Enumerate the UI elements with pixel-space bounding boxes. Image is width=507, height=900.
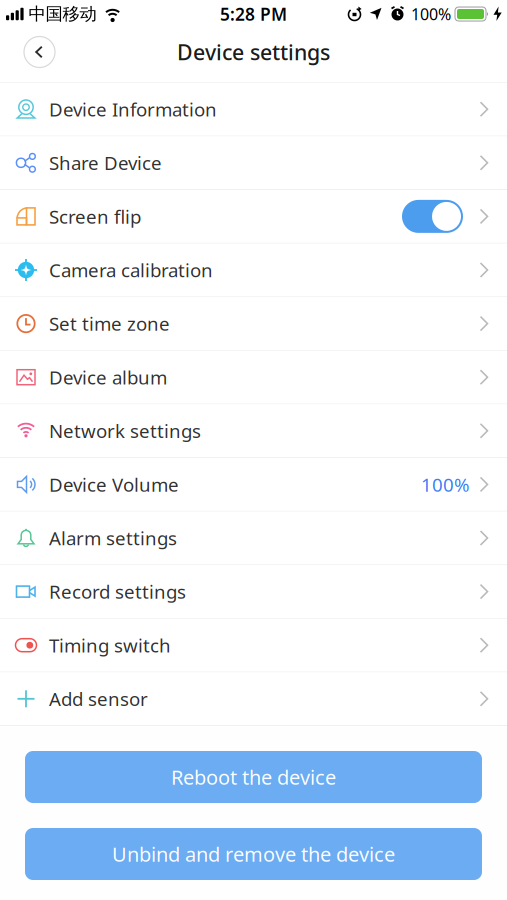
staticText: 100% xyxy=(421,472,470,497)
button[interactable]: Camera calibration xyxy=(0,244,507,297)
staticText: Device Information xyxy=(49,97,217,122)
button[interactable]: Share Device xyxy=(0,136,507,190)
button[interactable]: Unbind and remove the device xyxy=(25,828,482,880)
staticText: Alarm settings xyxy=(49,526,177,550)
staticText: Set time zone xyxy=(49,311,170,336)
staticText: Reboot the device xyxy=(171,764,336,790)
staticText: Share Device xyxy=(49,150,162,175)
staticText: Device album xyxy=(49,365,167,390)
button[interactable]: Device album xyxy=(0,351,507,404)
staticText: Camera calibration xyxy=(49,258,213,282)
staticText: 100% xyxy=(411,3,451,25)
button[interactable]: Back xyxy=(24,36,55,67)
button[interactable]: Add sensor xyxy=(0,672,507,726)
staticText: Screen flip xyxy=(49,204,141,229)
button[interactable]: Device Information xyxy=(0,83,507,136)
button[interactable]: Screen flip xyxy=(0,190,507,244)
button[interactable]: Screen flip xyxy=(402,200,463,233)
button[interactable]: Timing switch xyxy=(0,619,507,672)
button[interactable]: Record settings xyxy=(0,565,507,619)
staticText: Device settings xyxy=(177,38,330,66)
button[interactable]: Set time zone xyxy=(0,297,507,351)
staticText: Network settings xyxy=(49,418,201,443)
staticText: 中国移动 xyxy=(29,3,97,25)
staticText: Add sensor xyxy=(49,686,148,711)
staticText: Device Volume xyxy=(49,472,179,497)
button[interactable]: Network settings xyxy=(0,404,507,458)
staticText: 5:28 PM xyxy=(220,2,287,25)
button[interactable]: Reboot the device xyxy=(25,751,482,803)
button[interactable]: Device Volume xyxy=(0,458,507,512)
staticText: Unbind and remove the device xyxy=(112,841,395,867)
staticText: Timing switch xyxy=(49,633,171,658)
button[interactable]: Alarm settings xyxy=(0,512,507,565)
staticText: Record settings xyxy=(49,579,186,604)
